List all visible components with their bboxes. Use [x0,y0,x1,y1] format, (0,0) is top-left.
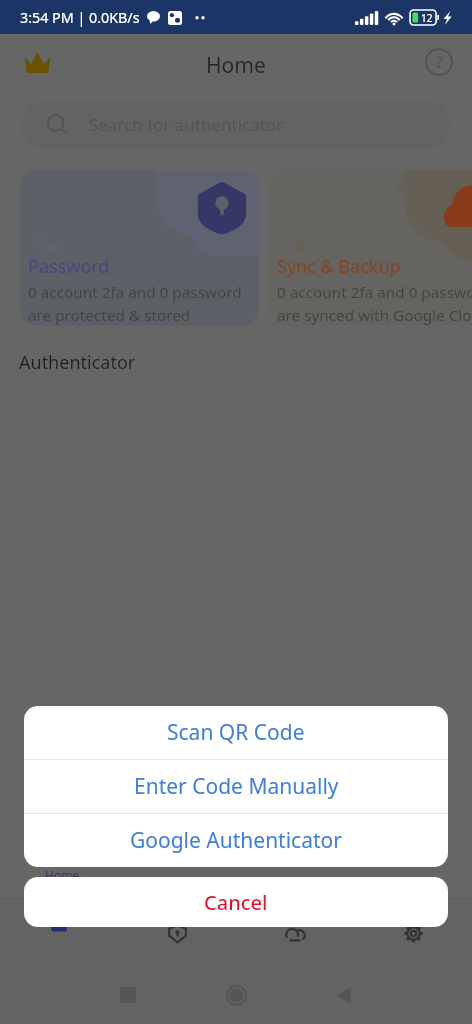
staticText: Password [28,254,110,279]
button[interactable]: Help [420,43,458,81]
button[interactable]: Vault [118,899,236,967]
staticText: Home [45,867,80,883]
button[interactable]: Settings [354,899,472,967]
button[interactable]: Password [20,170,259,326]
button[interactable]: Premium [14,39,60,85]
staticText: Sync & Backup [277,254,401,279]
button[interactable]: Cancel [24,877,448,927]
staticText: Cancel [204,889,268,916]
staticText: ? [436,51,443,73]
button[interactable]: Cloud [236,899,354,967]
staticText: are protected & stored [28,305,191,326]
staticText: Home [206,51,266,80]
staticText: Search for authenticator [89,113,284,136]
staticText: 0 account 2fa and 0 password [28,282,242,303]
button[interactable]: Home [216,975,256,1015]
staticText: Authenticator [19,350,136,375]
staticText: 3:54 PM | 0.0KB/s [20,8,140,27]
staticText: Google Authenticator [130,826,342,855]
button[interactable]: Google Authenticator [24,814,448,867]
staticText: Scan QR Code [167,718,305,747]
button[interactable]: Scan QR Code [24,706,448,759]
button[interactable]: Back [323,975,363,1015]
button[interactable]: Enter Code Manually [24,760,448,813]
button[interactable]: Sync & Backup [269,170,472,326]
button[interactable]: Recents [108,975,148,1015]
button[interactable]: Home [0,899,118,967]
staticText: 12 [421,11,433,25]
staticText: 0 account 2fa and 0 password [277,282,472,303]
staticText: are synced with Google Cloud [277,305,472,326]
staticText: Enter Code Manually [134,772,339,801]
